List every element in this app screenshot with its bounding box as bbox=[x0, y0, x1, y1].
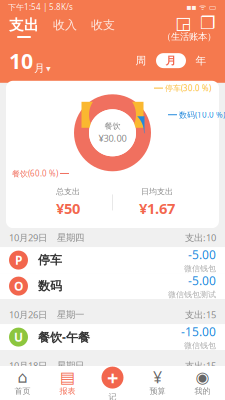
staticText: 下午1:54 | 5.8K/s bbox=[8, 2, 73, 12]
staticText: 预算 bbox=[149, 386, 165, 396]
button[interactable]: 年 bbox=[186, 53, 216, 68]
button[interactable]: 切换账本 bbox=[200, 16, 216, 30]
staticText: 收入 bbox=[53, 18, 77, 32]
staticText: 微信钱包 bbox=[184, 264, 216, 273]
staticText: 10月26日 bbox=[9, 308, 47, 321]
button[interactable]: ⌂ bbox=[0, 366, 45, 400]
staticText: ¥ bbox=[153, 366, 162, 388]
button[interactable]: ▤ bbox=[45, 366, 90, 400]
button[interactable]: 收支 bbox=[91, 18, 115, 36]
staticText: ◉ bbox=[195, 368, 209, 386]
staticText: 停车 bbox=[38, 253, 62, 267]
staticText: 微信钱包测试 bbox=[168, 290, 216, 299]
staticText: 支出:15 bbox=[185, 308, 216, 321]
staticText: 微信钱包 bbox=[184, 341, 216, 350]
button[interactable]: 月 bbox=[156, 53, 186, 68]
staticText: 支付宝测试 bbox=[176, 392, 216, 400]
staticText: 我的 bbox=[194, 386, 210, 396]
button[interactable]: O bbox=[0, 273, 225, 299]
staticText: 数码(10.0 %) bbox=[179, 109, 225, 120]
staticText: ¥1.67 bbox=[139, 199, 175, 218]
staticText: ¥30.00 bbox=[98, 132, 126, 144]
staticText: 记 bbox=[108, 392, 116, 400]
staticText: O bbox=[14, 278, 23, 294]
staticText: P bbox=[15, 252, 22, 268]
button[interactable]: ¥ bbox=[135, 366, 180, 400]
staticText: 周 bbox=[135, 54, 146, 67]
button[interactable]: U bbox=[0, 324, 225, 350]
staticText: ¥50 bbox=[56, 199, 80, 218]
button[interactable]: 图表 bbox=[175, 16, 191, 30]
staticText: 支出:10 bbox=[185, 231, 216, 244]
staticText: 星期一 bbox=[57, 309, 84, 320]
staticText: 10 bbox=[9, 46, 33, 75]
staticText: 收支 bbox=[91, 18, 115, 32]
staticText: 年 bbox=[195, 54, 206, 67]
staticText: 停车(30.0 %) bbox=[165, 83, 211, 93]
staticText: 餐饮-晚餐 bbox=[38, 380, 90, 396]
button[interactable]: U bbox=[0, 375, 225, 400]
staticText: 餐饮-午餐 bbox=[38, 329, 90, 345]
button[interactable]: 10 bbox=[9, 46, 51, 75]
staticText: （生活账本） bbox=[162, 31, 216, 42]
staticText: -5.00 bbox=[188, 247, 216, 263]
staticText: -15.00 bbox=[181, 324, 216, 340]
staticText: 10月18日 bbox=[9, 359, 47, 372]
button[interactable]: （生活账本） bbox=[162, 31, 216, 42]
staticText: ◲ bbox=[175, 13, 191, 33]
staticText: + bbox=[107, 364, 118, 391]
staticText: ▤ bbox=[60, 368, 75, 386]
button[interactable]: + bbox=[90, 366, 135, 400]
staticText: 月 bbox=[165, 54, 176, 67]
staticText: ⌂ bbox=[17, 368, 27, 386]
staticText: 星期日 bbox=[57, 360, 84, 371]
staticText: 总支出 bbox=[56, 187, 80, 197]
staticText: 餐饮 bbox=[104, 121, 120, 131]
button[interactable]: 收入 bbox=[53, 18, 77, 36]
button[interactable]: ◉ bbox=[180, 366, 225, 400]
staticText: 日均支出 bbox=[141, 187, 173, 197]
staticText: 报表 bbox=[59, 386, 75, 396]
staticText: 支出:15 bbox=[185, 359, 216, 372]
staticText: 餐饮(60.0 %) bbox=[12, 168, 58, 179]
button[interactable]: 周 bbox=[126, 53, 156, 68]
staticText: 数码 bbox=[38, 279, 62, 293]
staticText: 10月29日 bbox=[9, 231, 47, 244]
staticText: ❐ bbox=[200, 13, 216, 33]
staticText: 首页 bbox=[14, 386, 30, 396]
staticText: 月 bbox=[34, 62, 45, 75]
button[interactable]: P bbox=[0, 247, 225, 273]
staticText: 支出 bbox=[9, 16, 39, 34]
staticText: -15.00 bbox=[181, 375, 216, 391]
staticText: U bbox=[14, 380, 23, 396]
button[interactable]: 支出 bbox=[9, 16, 39, 38]
staticText: -5.00 bbox=[188, 273, 216, 289]
staticText: 星期四 bbox=[57, 232, 84, 243]
staticText: ▪▪ ᯤ ▭ bbox=[186, 2, 217, 12]
staticText: U bbox=[14, 329, 23, 345]
staticText: ▾ bbox=[46, 63, 51, 74]
